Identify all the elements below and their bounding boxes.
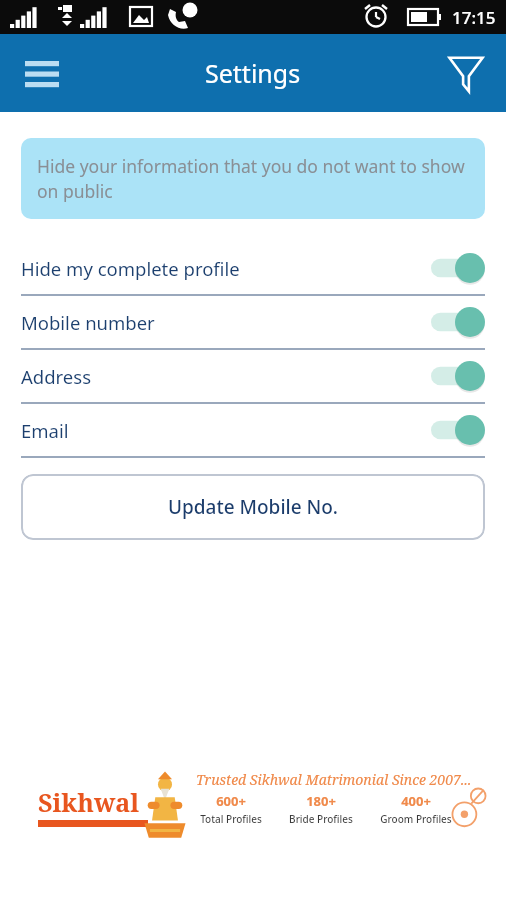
staticText: Settings [205, 56, 301, 90]
staticText: Hide my complete profile [21, 256, 431, 281]
button[interactable]: Update Mobile No. [21, 474, 485, 540]
staticText: Hide your information that you do not wa… [37, 154, 469, 203]
button[interactable]: Email [0, 404, 506, 456]
staticText: Sikhwal [38, 785, 140, 819]
staticText: Trusted Sikhwal Matrimonial Since 2007..… [196, 770, 472, 789]
button[interactable]: Open navigation menu [14, 45, 70, 101]
staticText: 400+ [401, 792, 431, 810]
staticText: 17:15 [452, 6, 496, 29]
staticText: Bride Profiles [289, 812, 353, 826]
staticText: Update Mobile No. [168, 494, 339, 520]
staticText: Mobile number [21, 310, 431, 335]
button[interactable]: Hide my complete profile [0, 242, 506, 294]
staticText: 180+ [306, 792, 336, 810]
button[interactable]: Address [0, 350, 506, 402]
staticText: 600+ [216, 792, 246, 810]
button[interactable]: Mobile number [0, 296, 506, 348]
staticText: Total Profiles [200, 812, 262, 826]
button[interactable]: Filter [438, 45, 494, 101]
staticText: Groom Profiles [380, 812, 452, 826]
staticText: Email [21, 418, 431, 443]
staticText: Address [21, 364, 431, 389]
